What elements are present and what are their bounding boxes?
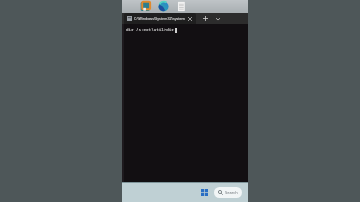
staticText: C:\Windows\System32\system [134, 16, 185, 21]
button[interactable]: Microsoft Edge [158, 1, 169, 12]
button[interactable]: Search [214, 187, 242, 198]
button[interactable]: Open dropdown [213, 14, 222, 23]
button[interactable]: Close tab [187, 16, 193, 22]
button[interactable]: App [140, 1, 151, 12]
button[interactable]: C:\Windows\System32\system [124, 13, 196, 24]
staticText: Search [225, 190, 238, 195]
button[interactable]: Start [199, 187, 210, 198]
staticText: dir /s:ext\util>dir [126, 27, 174, 33]
button[interactable]: New tab [201, 14, 210, 23]
button[interactable]: Document [176, 1, 187, 12]
button[interactable]: dir /s:ext\util>dir [122, 24, 248, 182]
